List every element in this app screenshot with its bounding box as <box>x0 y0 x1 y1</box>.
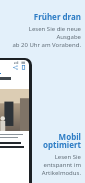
button[interactable]: Smartphone mit App-Vorschau <box>0 58 32 183</box>
button[interactable]: Merken <box>21 65 26 70</box>
staticText: Mobil optimiert <box>43 131 81 150</box>
button[interactable]: Früher dran <box>9 11 81 49</box>
staticText: Früher dran <box>33 11 81 22</box>
button[interactable]: Teilen <box>13 65 18 70</box>
staticText: Lesen Sie entspannt im Artikelmodus. <box>41 153 81 177</box>
button[interactable]: Mobil optimiert <box>37 131 81 177</box>
staticText: Lesen Sie die neue Ausgabe ab 20 Uhr am … <box>9 25 81 49</box>
